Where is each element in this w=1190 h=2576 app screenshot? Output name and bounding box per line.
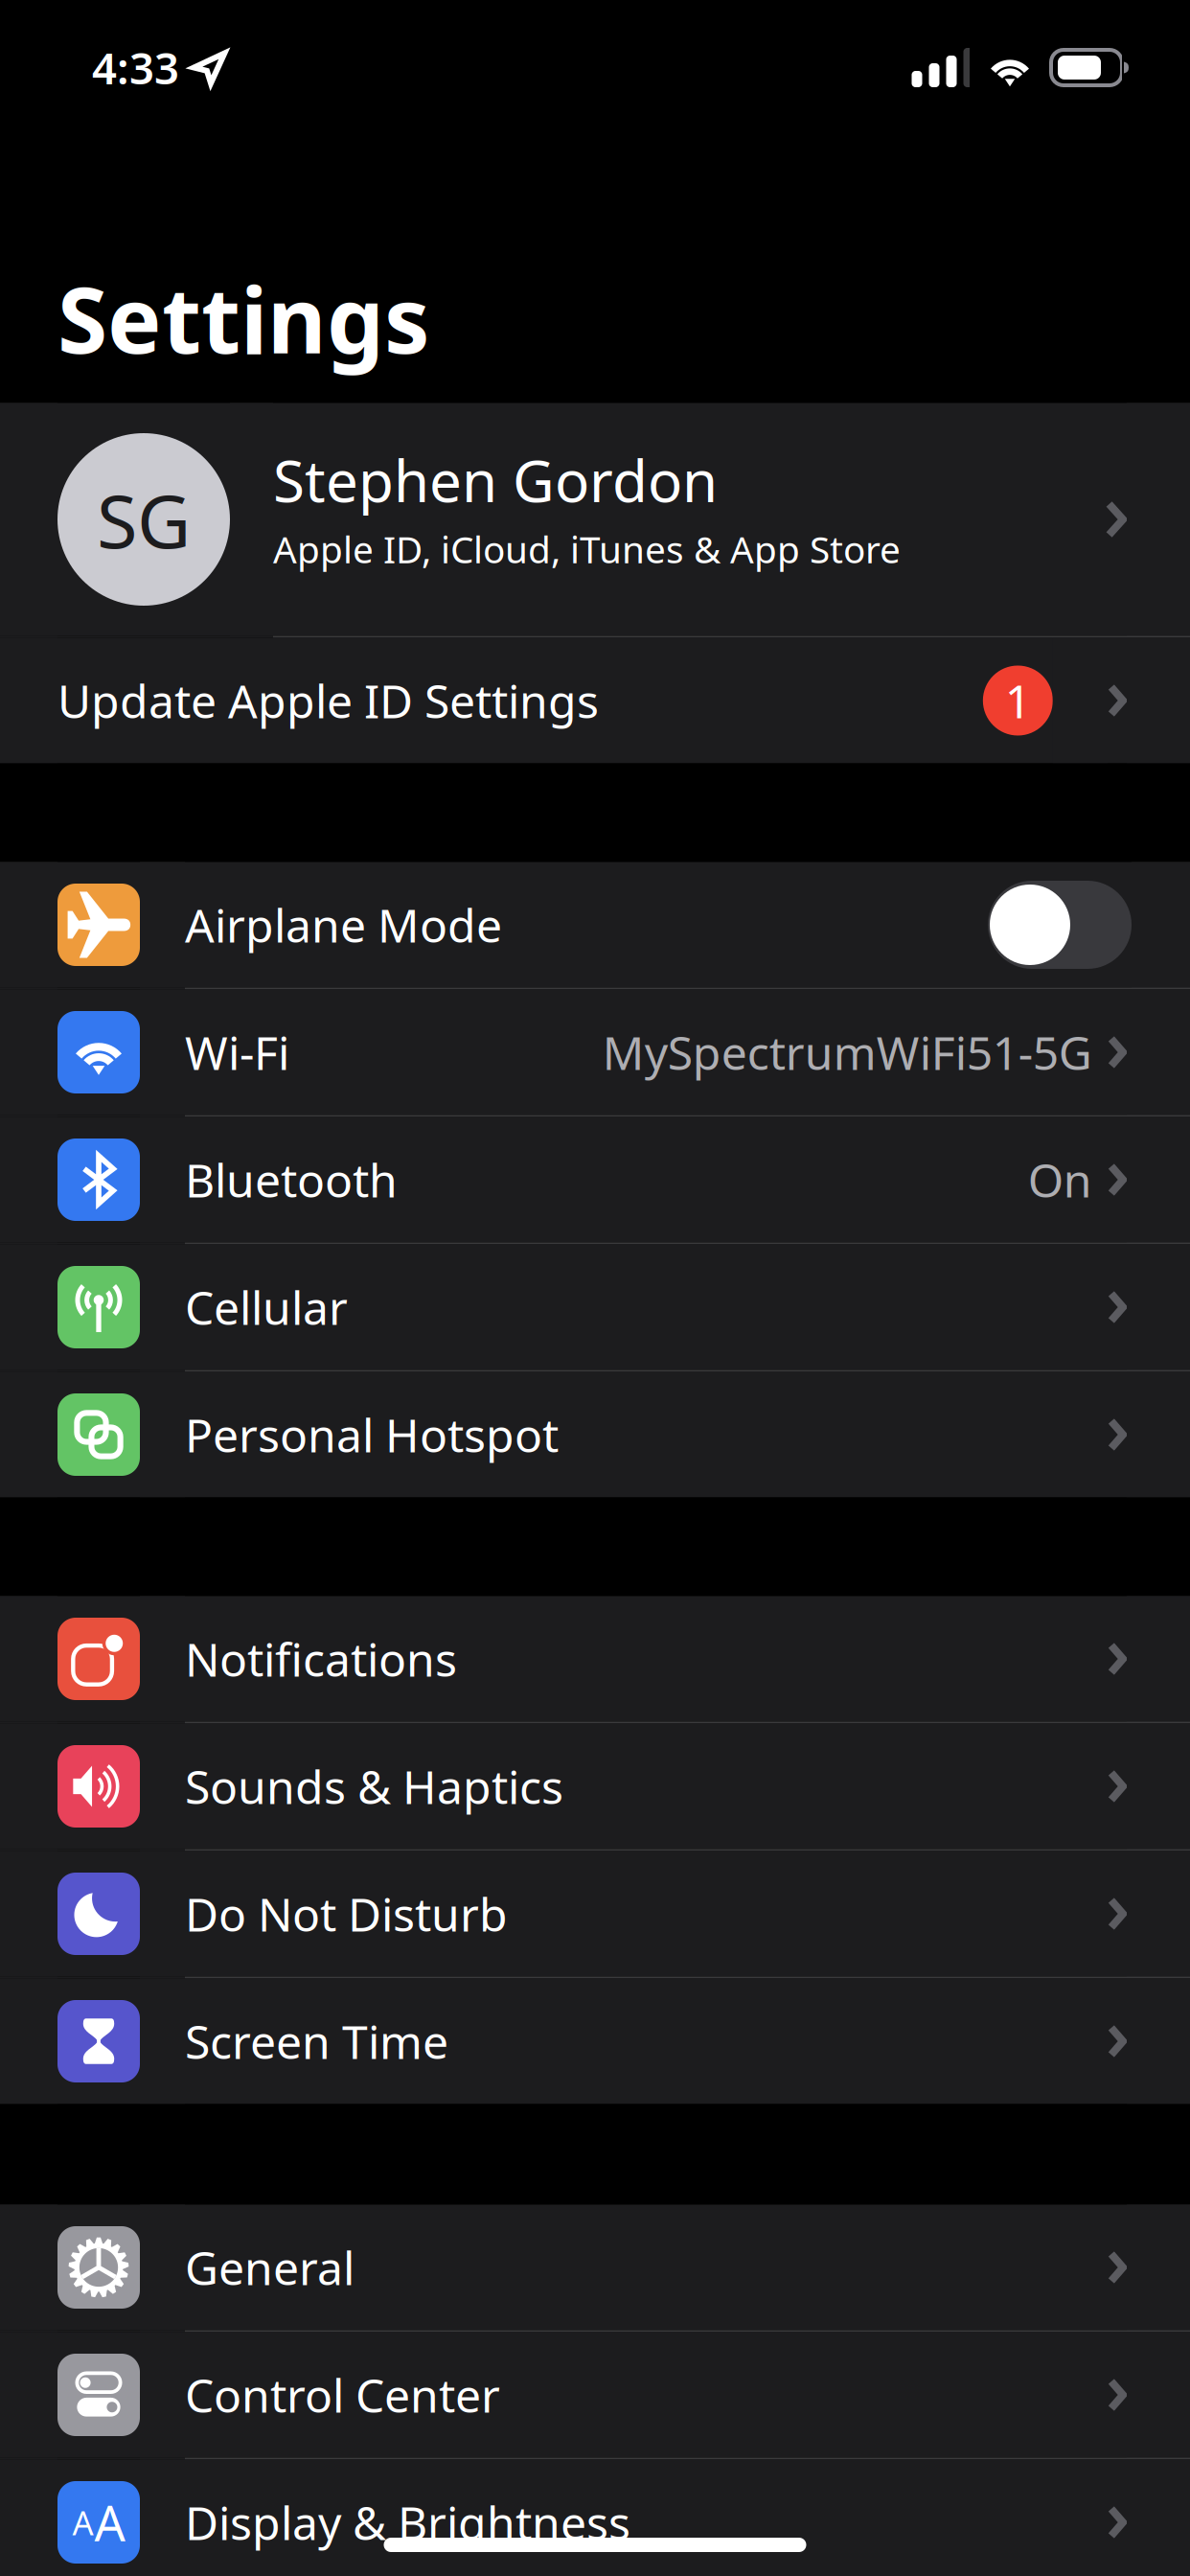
button[interactable]: Bluetooth: [0, 1117, 1190, 1242]
staticText: Wi-Fi: [185, 1022, 289, 1083]
staticText: Airplane Mode: [185, 894, 502, 955]
staticText: Notifications: [185, 1628, 457, 1689]
button[interactable]: Sounds & Haptics: [0, 1724, 1190, 1849]
staticText: 1: [1005, 670, 1031, 731]
staticText: Stephen Gordon: [273, 442, 718, 518]
staticText: A: [72, 2500, 93, 2544]
staticText: Update Apple ID Settings: [57, 670, 599, 731]
button[interactable]: Wi-Fi: [0, 989, 1190, 1115]
staticText: Cellular: [185, 1277, 348, 1338]
button[interactable]: Do Not Disturb: [0, 1851, 1190, 1977]
button[interactable]: General: [0, 2205, 1190, 2330]
staticText: Do Not Disturb: [185, 1883, 508, 1944]
staticText: MySpectrumWiFi51-5G: [602, 1022, 1092, 1083]
button[interactable]: Airplane Mode: [0, 862, 1190, 988]
staticText: Apple ID, iCloud, iTunes & App Store: [273, 524, 901, 573]
button[interactable]: SG: [0, 403, 1190, 636]
button[interactable]: Personal Hotspot: [0, 1372, 1190, 1497]
staticText: Settings: [57, 258, 430, 378]
button[interactable]: A: [0, 2460, 1190, 2576]
button[interactable]: Control Center: [0, 2332, 1190, 2458]
staticText: Display & Brightness: [185, 2492, 630, 2553]
staticText: 4:33: [92, 39, 179, 96]
button[interactable]: Cellular: [0, 1244, 1190, 1370]
staticText: SG: [97, 470, 191, 569]
button[interactable]: Update Apple ID Settings: [0, 638, 1190, 763]
button[interactable]: Screen Time: [0, 1978, 1190, 2104]
staticText: General: [185, 2237, 355, 2298]
staticText: Control Center: [185, 2364, 500, 2425]
staticText: Sounds & Haptics: [185, 1756, 563, 1817]
staticText: On: [1028, 1149, 1092, 1210]
button[interactable]: Notifications: [0, 1596, 1190, 1722]
staticText: A: [94, 2490, 125, 2555]
staticText: Screen Time: [185, 2011, 448, 2072]
staticText: Personal Hotspot: [185, 1404, 559, 1465]
staticText: Bluetooth: [185, 1149, 398, 1210]
